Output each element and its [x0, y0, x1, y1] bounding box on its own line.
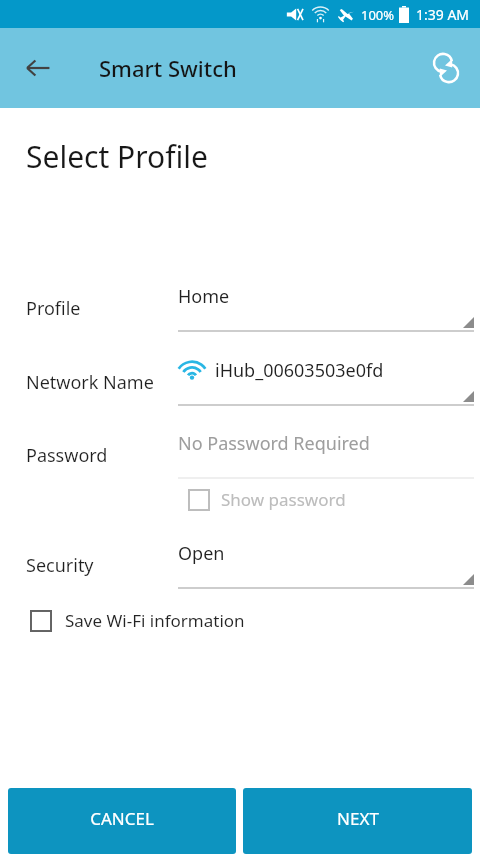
staticText: NEXT: [337, 807, 379, 830]
staticText: Home: [178, 284, 230, 309]
staticText: Open: [178, 541, 225, 566]
button[interactable]: Show password: [188, 488, 464, 511]
staticText: Security: [26, 553, 94, 578]
staticText: Smart Switch: [99, 53, 237, 83]
staticText: No Password Required: [178, 431, 370, 456]
staticText: Show password: [221, 488, 346, 511]
staticText: Select Profile: [26, 136, 208, 177]
staticText: Profile: [26, 296, 81, 321]
staticText: Network Name: [26, 370, 154, 395]
staticText: Password: [26, 443, 108, 468]
button[interactable]: iHub_00603503e0fd: [178, 358, 474, 406]
button[interactable]: Open: [178, 541, 474, 589]
staticText: 1:39 AM: [416, 5, 470, 24]
staticText: iHub_00603503e0fd: [215, 358, 384, 383]
button[interactable]: NEXT: [243, 788, 472, 854]
button[interactable]: No Password Required: [178, 431, 474, 479]
button[interactable]: Password: [0, 431, 480, 479]
staticText: CANCEL: [90, 807, 154, 830]
button[interactable]: Back: [14, 44, 62, 92]
button[interactable]: Network Name: [0, 358, 480, 406]
button[interactable]: Save Wi-Fi information: [30, 609, 464, 632]
staticText: Save Wi-Fi information: [65, 609, 245, 632]
button[interactable]: CANCEL: [8, 788, 236, 854]
button[interactable]: Refresh: [422, 44, 470, 92]
button[interactable]: Security: [0, 541, 480, 589]
button[interactable]: Profile: [0, 284, 480, 332]
button[interactable]: Home: [178, 284, 474, 332]
staticText: 100%: [361, 6, 395, 24]
